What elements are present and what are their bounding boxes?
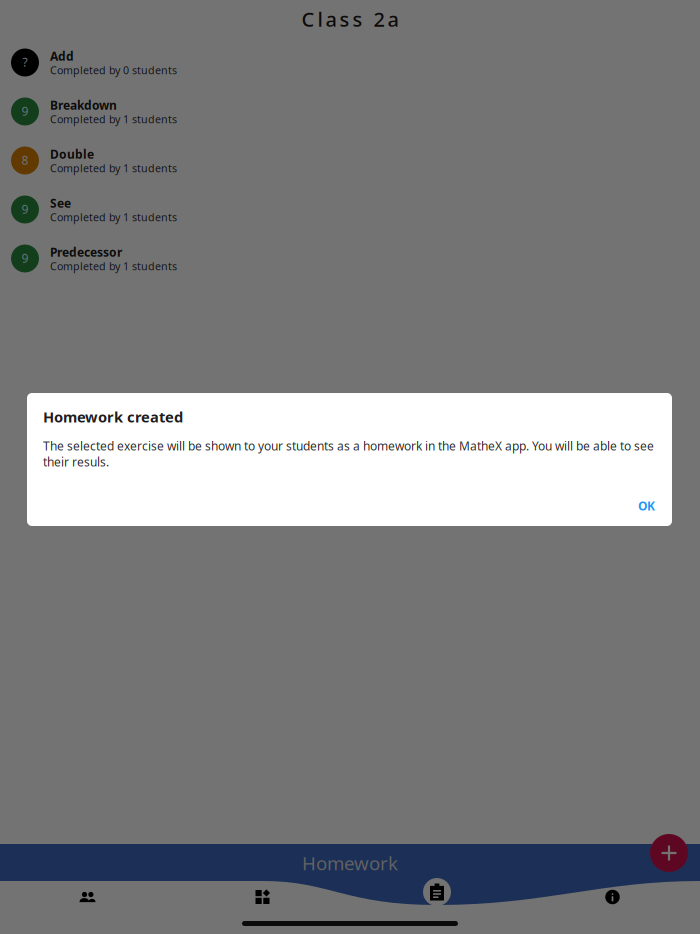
button[interactable]: 8 xyxy=(0,136,700,185)
button[interactable]: Homework xyxy=(423,878,451,906)
staticText: Completed by 0 students xyxy=(50,63,177,77)
button[interactable]: Students xyxy=(0,885,175,909)
staticText: Breakdown xyxy=(50,97,117,113)
button[interactable]: ? xyxy=(0,38,700,87)
staticText: Completed by 1 students xyxy=(50,210,177,224)
staticText: Homework xyxy=(302,851,398,875)
staticText: Completed by 1 students xyxy=(50,112,177,126)
staticText: C l a s s 2 a xyxy=(301,6,398,32)
staticText: Add xyxy=(50,48,74,64)
staticText: Completed by 1 students xyxy=(50,259,177,273)
button[interactable]: Homework xyxy=(350,885,525,909)
button[interactable]: Add homework xyxy=(650,834,688,872)
staticText: See xyxy=(50,195,71,211)
staticText: Completed by 1 students xyxy=(50,161,177,175)
staticText: Double xyxy=(50,146,94,162)
button[interactable]: Information xyxy=(525,885,700,909)
button[interactable]: OK xyxy=(631,491,662,521)
staticText: 9 xyxy=(21,250,28,266)
staticText: Predecessor xyxy=(50,244,122,260)
staticText: 9 xyxy=(21,103,28,119)
staticText: ? xyxy=(22,54,27,70)
staticText: 9 xyxy=(21,201,28,217)
staticText: Homework created xyxy=(43,407,183,426)
button[interactable]: 9 xyxy=(0,87,700,136)
button[interactable]: 9 xyxy=(0,234,700,283)
button[interactable]: 9 xyxy=(0,185,700,234)
staticText: OK xyxy=(638,498,655,514)
button[interactable]: Classes xyxy=(175,885,350,909)
staticText: 8 xyxy=(21,152,28,168)
staticText: The selected exercise will be shown to y… xyxy=(43,438,654,470)
